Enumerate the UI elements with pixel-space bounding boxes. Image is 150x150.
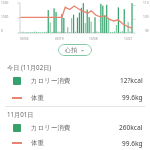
button[interactable]: カロリー消費 [0, 72, 150, 89]
button[interactable]: 心拍 [58, 44, 92, 56]
staticText: 1500 [1, 1, 9, 5]
staticText: 09/19 [55, 37, 64, 41]
staticText: 09/06 [20, 37, 29, 41]
staticText: 100 [143, 15, 149, 19]
staticText: 0 [1, 29, 3, 33]
button[interactable]: 体重 [0, 89, 150, 106]
button[interactable]: 体重 [0, 136, 150, 150]
staticText: 10/21 [124, 37, 133, 41]
staticText: 99.6kg [122, 139, 143, 148]
staticText: 110 [143, 1, 149, 5]
staticText: 体重 [31, 94, 44, 102]
staticText: カロリー消費 [31, 124, 71, 132]
staticText: 今日 (11月02日) [7, 63, 52, 71]
staticText: 10/08 [89, 37, 98, 41]
staticText: 体重 [31, 139, 44, 147]
staticText: 11月01日 [7, 110, 34, 118]
staticText: 99.6kg [122, 93, 143, 102]
staticText: 90 [145, 29, 149, 33]
other: メトリック選択 [80, 48, 85, 53]
staticText: カロリー消費 [31, 77, 71, 85]
button[interactable]: カロリー消費 [0, 119, 150, 136]
staticText: 260kcal [119, 123, 143, 132]
staticText: 1000 [1, 15, 9, 19]
staticText: 12?kcal [120, 76, 143, 85]
staticText: 心拍 [65, 46, 77, 54]
